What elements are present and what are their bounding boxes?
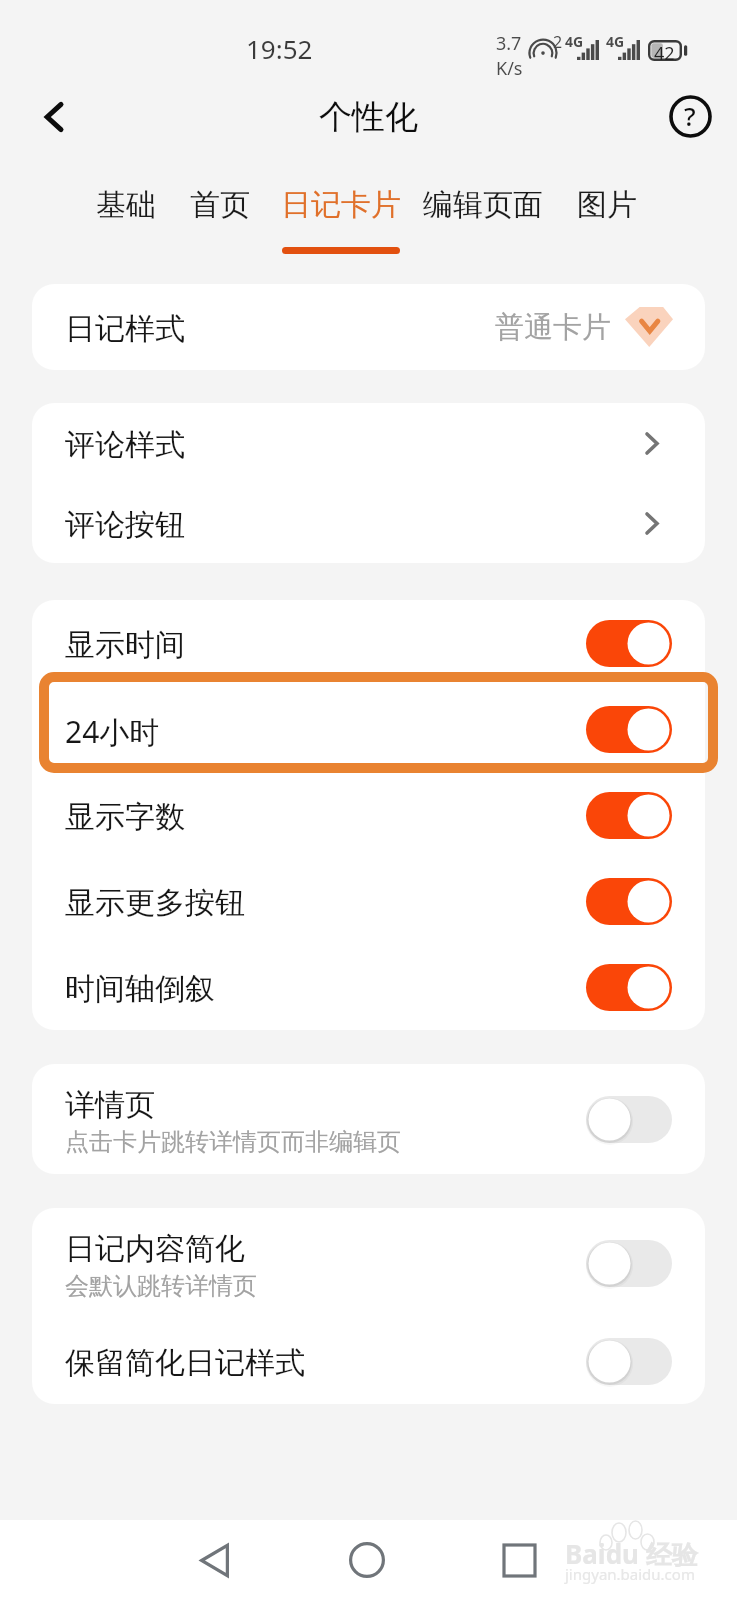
staticText: 显示时间: [65, 626, 185, 664]
staticText: 个性化: [319, 96, 418, 138]
staticText: 日记卡片: [281, 186, 401, 224]
button[interactable]: Help: [662, 88, 718, 144]
button[interactable]: 首页: [184, 186, 256, 247]
staticText: 4G: [565, 32, 584, 51]
staticText: 19:52: [246, 31, 313, 66]
staticText: 点击卡片跳转详情页而非编辑页: [65, 1127, 401, 1157]
staticText: 基础: [96, 186, 156, 224]
button[interactable]: Back: [185, 1530, 245, 1590]
staticText: 24小时: [65, 711, 160, 752]
staticText: 42: [654, 41, 675, 66]
button[interactable]: 时间轴倒叙: [32, 944, 705, 1030]
staticText: 日记样式: [65, 310, 185, 348]
button[interactable]: 评论样式: [32, 403, 705, 483]
button[interactable]: On: [586, 620, 672, 667]
button[interactable]: 日记卡片: [275, 186, 407, 254]
staticText: 首页: [190, 186, 250, 224]
button[interactable]: 日记内容简化: [32, 1208, 705, 1318]
staticText: 3.7: [496, 31, 522, 56]
staticText: 显示更多按钮: [65, 884, 245, 922]
staticText: jingyan.baidu.com: [565, 1564, 695, 1584]
button[interactable]: 编辑页面: [417, 186, 549, 247]
button[interactable]: On: [586, 878, 672, 925]
button[interactable]: Back: [27, 89, 83, 145]
button[interactable]: 详情页: [32, 1064, 705, 1174]
staticText: 评论样式: [65, 426, 185, 464]
staticText: 普通卡片: [495, 309, 611, 346]
staticText: 2: [553, 31, 563, 53]
staticText: K/s: [496, 56, 523, 81]
button[interactable]: 显示更多按钮: [32, 858, 705, 944]
button[interactable]: 24小时: [32, 686, 705, 772]
button[interactable]: 显示时间: [32, 600, 705, 686]
button[interactable]: 图片: [571, 186, 643, 247]
staticText: 图片: [577, 186, 637, 224]
staticText: 编辑页面: [423, 186, 543, 224]
staticText: 时间轴倒叙: [65, 970, 215, 1008]
staticText: 评论按钮: [65, 506, 185, 544]
button[interactable]: 评论按钮: [32, 483, 705, 563]
button[interactable]: Home: [337, 1530, 397, 1590]
staticText: 4G: [606, 32, 625, 51]
button[interactable]: 日记样式: [32, 284, 705, 370]
button[interactable]: On: [586, 964, 672, 1011]
staticText: 保留简化日记样式: [65, 1344, 305, 1382]
staticText: Baidu 经验: [565, 1536, 698, 1572]
button[interactable]: Off: [586, 1338, 672, 1385]
staticText: 会默认跳转详情页: [65, 1271, 257, 1301]
button[interactable]: On: [586, 792, 672, 839]
button[interactable]: On: [586, 706, 672, 753]
button[interactable]: Off: [586, 1240, 672, 1287]
button[interactable]: Off: [586, 1096, 672, 1143]
staticText: ?: [684, 98, 696, 133]
staticText: 详情页: [65, 1086, 155, 1124]
staticText: 日记内容简化: [65, 1230, 245, 1268]
staticText: 显示字数: [65, 798, 185, 836]
button[interactable]: 显示字数: [32, 772, 705, 858]
button[interactable]: 保留简化日记样式: [32, 1318, 705, 1404]
button[interactable]: Recents: [489, 1530, 549, 1590]
button[interactable]: 基础: [90, 186, 162, 247]
